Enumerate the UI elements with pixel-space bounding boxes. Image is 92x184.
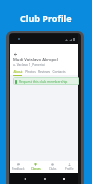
- button[interactable]: Classes: [27, 163, 44, 173]
- staticText: Reviews: [38, 70, 50, 74]
- staticText: Club Profile: [20, 12, 72, 24]
- button[interactable]: Feedback: [10, 163, 27, 173]
- button[interactable]: Profile: [61, 163, 78, 173]
- button[interactable]: Reviews: [37, 70, 51, 76]
- staticText: Classes: [31, 167, 41, 171]
- button[interactable]: Recents: [61, 176, 66, 181]
- button[interactable]: Back: [22, 176, 27, 181]
- button[interactable]: Home: [42, 176, 47, 181]
- button[interactable]: Photos: [24, 70, 37, 76]
- staticText: Request this club membership: [19, 79, 68, 84]
- staticText: Contacts: [52, 70, 66, 74]
- button[interactable]: Back: [11, 50, 20, 59]
- button[interactable]: About: [11, 70, 24, 76]
- staticText: About: [13, 70, 23, 74]
- button[interactable]: Contacts: [51, 70, 66, 76]
- staticText: Photos: [25, 70, 36, 74]
- staticText: Mudi Vatslavo Akropol: [13, 57, 58, 63]
- staticText: Profile: [65, 167, 74, 171]
- button[interactable]: Request this club membership: [13, 77, 79, 85]
- button[interactable]: Clubs: [44, 163, 61, 173]
- staticText: u. Vaclavo 1, Paneriai: [13, 63, 45, 67]
- staticText: Clubs: [49, 167, 57, 171]
- staticText: Feedback: [12, 167, 25, 171]
